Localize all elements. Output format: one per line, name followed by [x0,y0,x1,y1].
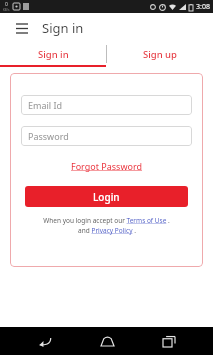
button[interactable]: Login [25,186,188,207]
button[interactable]: Sign up [107,43,213,65]
staticText: When you login accept our Terms of Use . [43,216,170,225]
button[interactable]: Forgot Password [69,159,145,173]
staticText: KB/s [3,8,10,12]
staticText: 3:08 [196,2,210,12]
staticText: Login [93,190,120,204]
button[interactable]: Sign in [0,43,106,65]
staticText: Sign in [38,48,69,61]
button[interactable]: Recent apps [151,328,187,354]
staticText: Forgot Password [71,160,143,172]
staticText: 0 [5,1,8,8]
button[interactable]: Open navigation menu [12,18,32,38]
button[interactable]: Back [26,328,62,354]
button[interactable]: Home [89,328,125,354]
staticText: and Privacy Policy . [78,226,136,235]
staticText: Email Id [28,99,63,111]
button[interactable]: and Privacy Policy . [78,226,136,235]
staticText: Sign in [42,19,84,37]
button[interactable]: Email Id [21,95,192,115]
staticText: Sign up [143,48,177,61]
button[interactable]: Password [21,126,192,146]
staticText: Password [28,130,69,142]
